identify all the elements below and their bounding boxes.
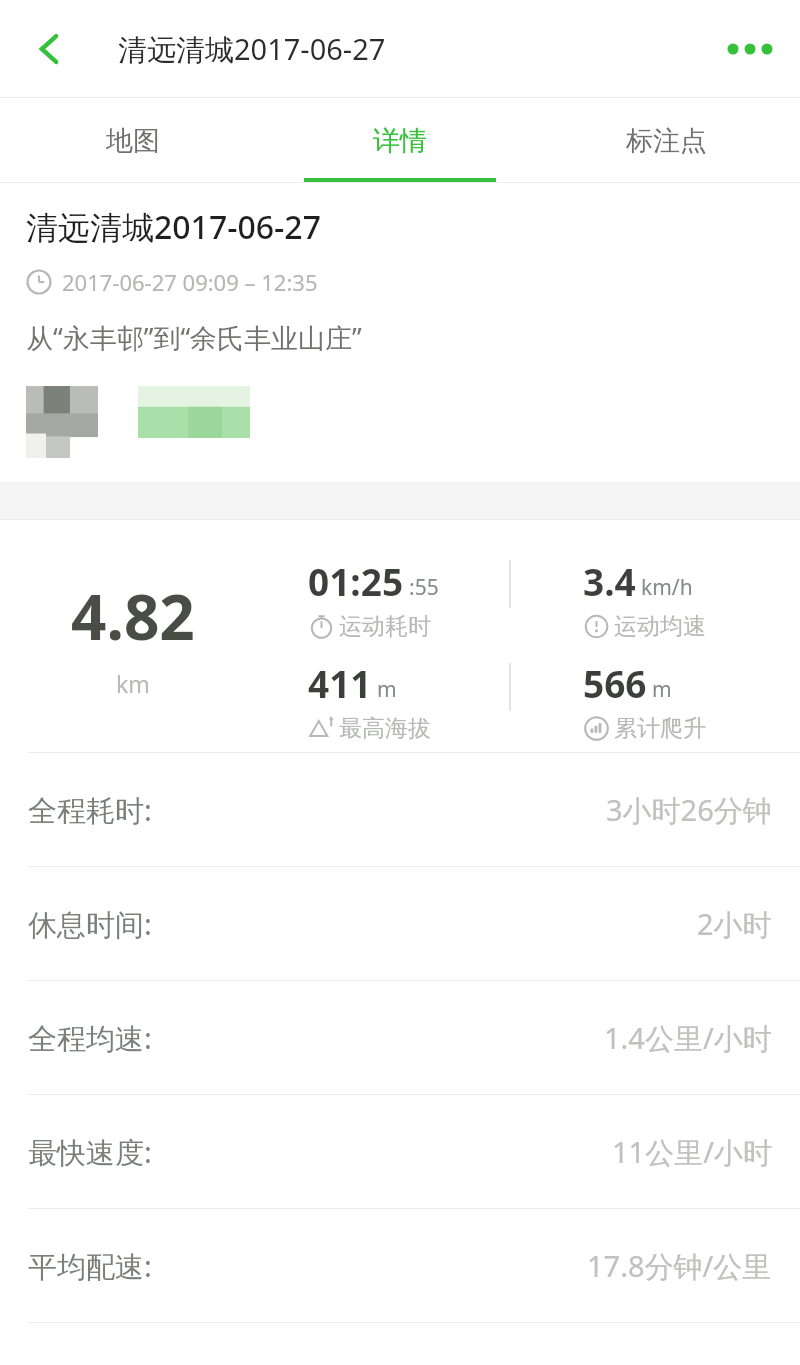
button[interactable]: 休息时间: [0, 867, 800, 980]
staticText: 17.8分钟/公里 [587, 1246, 772, 1286]
staticText: 详情 [373, 124, 427, 158]
staticText: 地图 [106, 124, 160, 158]
staticText: 最快速度: [28, 1132, 152, 1172]
staticText: 411 [308, 658, 372, 708]
staticText: m [377, 675, 397, 704]
staticText: 休息时间: [28, 904, 152, 944]
staticText: 运动耗时 [339, 612, 431, 641]
staticText: 最高海拔 [339, 714, 431, 743]
staticText: km/h [641, 573, 693, 602]
staticText: m [652, 675, 672, 704]
staticText: 平均配速: [28, 1246, 152, 1286]
staticText: 全程耗时: [28, 790, 152, 830]
staticText: 01:25 [308, 556, 404, 606]
staticText: 4.82 [71, 574, 195, 658]
staticText: 1.4公里/小时 [604, 1018, 772, 1058]
button[interactable]: 地图 [0, 98, 266, 183]
staticText: 3.4 [583, 556, 636, 606]
button[interactable]: 全程均速: [0, 981, 800, 1094]
button[interactable]: 标注点 [533, 98, 800, 183]
staticText: 11公里/小时 [612, 1132, 772, 1172]
button[interactable]: Back [14, 13, 86, 85]
button[interactable]: 详情 [266, 98, 533, 183]
staticText: 全程均速: [28, 1018, 152, 1058]
staticText: :55 [409, 573, 439, 602]
button[interactable]: 全程耗时: [0, 753, 800, 866]
staticText: 566 [583, 658, 647, 708]
staticText: 累计爬升 [614, 714, 706, 743]
button[interactable]: 平均配速: [0, 1209, 800, 1322]
staticText: 从“永丰邨”到“余氏丰业山庄” [26, 319, 362, 356]
staticText: 标注点 [626, 124, 707, 158]
staticText: 运动均速 [614, 612, 706, 641]
staticText: 清远清城2017-06-27 [118, 29, 386, 69]
staticText: km [116, 668, 150, 699]
staticText: 2小时 [697, 904, 772, 944]
staticText: 3小时26分钟 [606, 790, 772, 830]
button[interactable]: 最快速度: [0, 1095, 800, 1208]
button[interactable]: More options [714, 13, 786, 85]
staticText: 2017-06-27 09:09 – 12:35 [62, 267, 318, 297]
staticText: 清远清城2017-06-27 [26, 205, 321, 249]
